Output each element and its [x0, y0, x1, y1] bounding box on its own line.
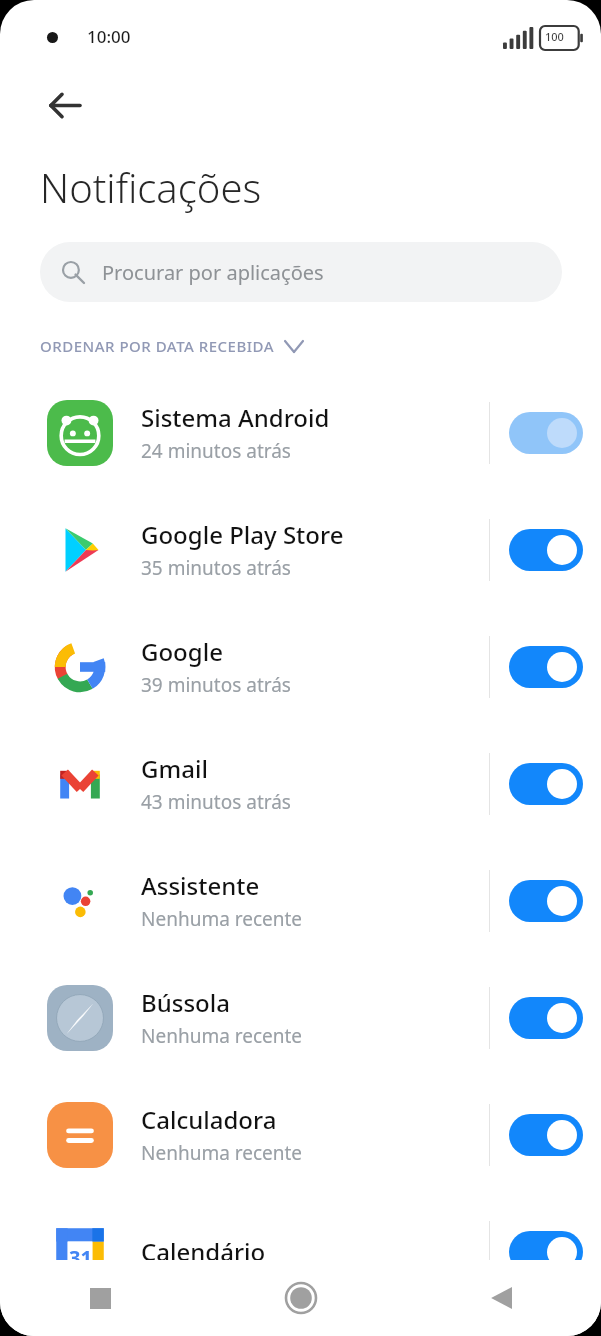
- staticText: 31: [69, 1244, 92, 1271]
- staticText: Procurar por aplicações: [102, 259, 324, 286]
- button[interactable]: Recents: [0, 1260, 201, 1336]
- staticText: Nenhuma recente: [141, 1140, 303, 1166]
- staticText: Assistente: [141, 869, 260, 902]
- staticText: 100: [545, 29, 564, 44]
- button[interactable]: Calculadora: [0, 1076, 601, 1193]
- button[interactable]: Gmail: [0, 725, 601, 842]
- button[interactable]: 31: [0, 1193, 601, 1310]
- button[interactable]: [490, 1193, 601, 1310]
- staticText: Nenhuma recente: [141, 1023, 303, 1049]
- button[interactable]: [490, 1076, 601, 1193]
- button[interactable]: [490, 725, 601, 842]
- staticText: 35 minutos atrás: [141, 555, 291, 581]
- button[interactable]: Assistente: [0, 842, 601, 959]
- button[interactable]: Bússola: [0, 959, 601, 1076]
- button[interactable]: [490, 959, 601, 1076]
- button[interactable]: Procurar por aplicações: [40, 242, 562, 302]
- staticText: 10:00: [87, 25, 131, 48]
- staticText: 43 minutos atrás: [141, 789, 291, 815]
- staticText: 24 minutos atrás: [141, 438, 291, 464]
- button[interactable]: [490, 374, 601, 491]
- staticText: Nenhuma recente: [141, 906, 303, 932]
- staticText: Bússola: [141, 986, 230, 1019]
- staticText: 39 minutos atrás: [141, 672, 291, 698]
- button[interactable]: Back: [27, 68, 101, 142]
- button[interactable]: ORDENAR POR DATA RECEBIDA: [40, 336, 303, 356]
- button[interactable]: [490, 842, 601, 959]
- button[interactable]: Google Play Store: [0, 491, 601, 608]
- staticText: Google: [141, 635, 223, 668]
- staticText: Calculadora: [141, 1103, 277, 1136]
- staticText: ORDENAR POR DATA RECEBIDA: [40, 336, 275, 356]
- staticText: Calendário: [141, 1235, 266, 1268]
- button[interactable]: [490, 491, 601, 608]
- staticText: Sistema Android: [141, 401, 330, 434]
- button[interactable]: Home: [201, 1260, 401, 1336]
- button[interactable]: Sistema Android: [0, 374, 601, 491]
- button[interactable]: [490, 608, 601, 725]
- staticText: Google Play Store: [141, 518, 344, 551]
- button[interactable]: Back: [401, 1260, 601, 1336]
- staticText: Notificações: [40, 160, 262, 214]
- button[interactable]: Google: [0, 608, 601, 725]
- staticText: Gmail: [141, 752, 208, 785]
